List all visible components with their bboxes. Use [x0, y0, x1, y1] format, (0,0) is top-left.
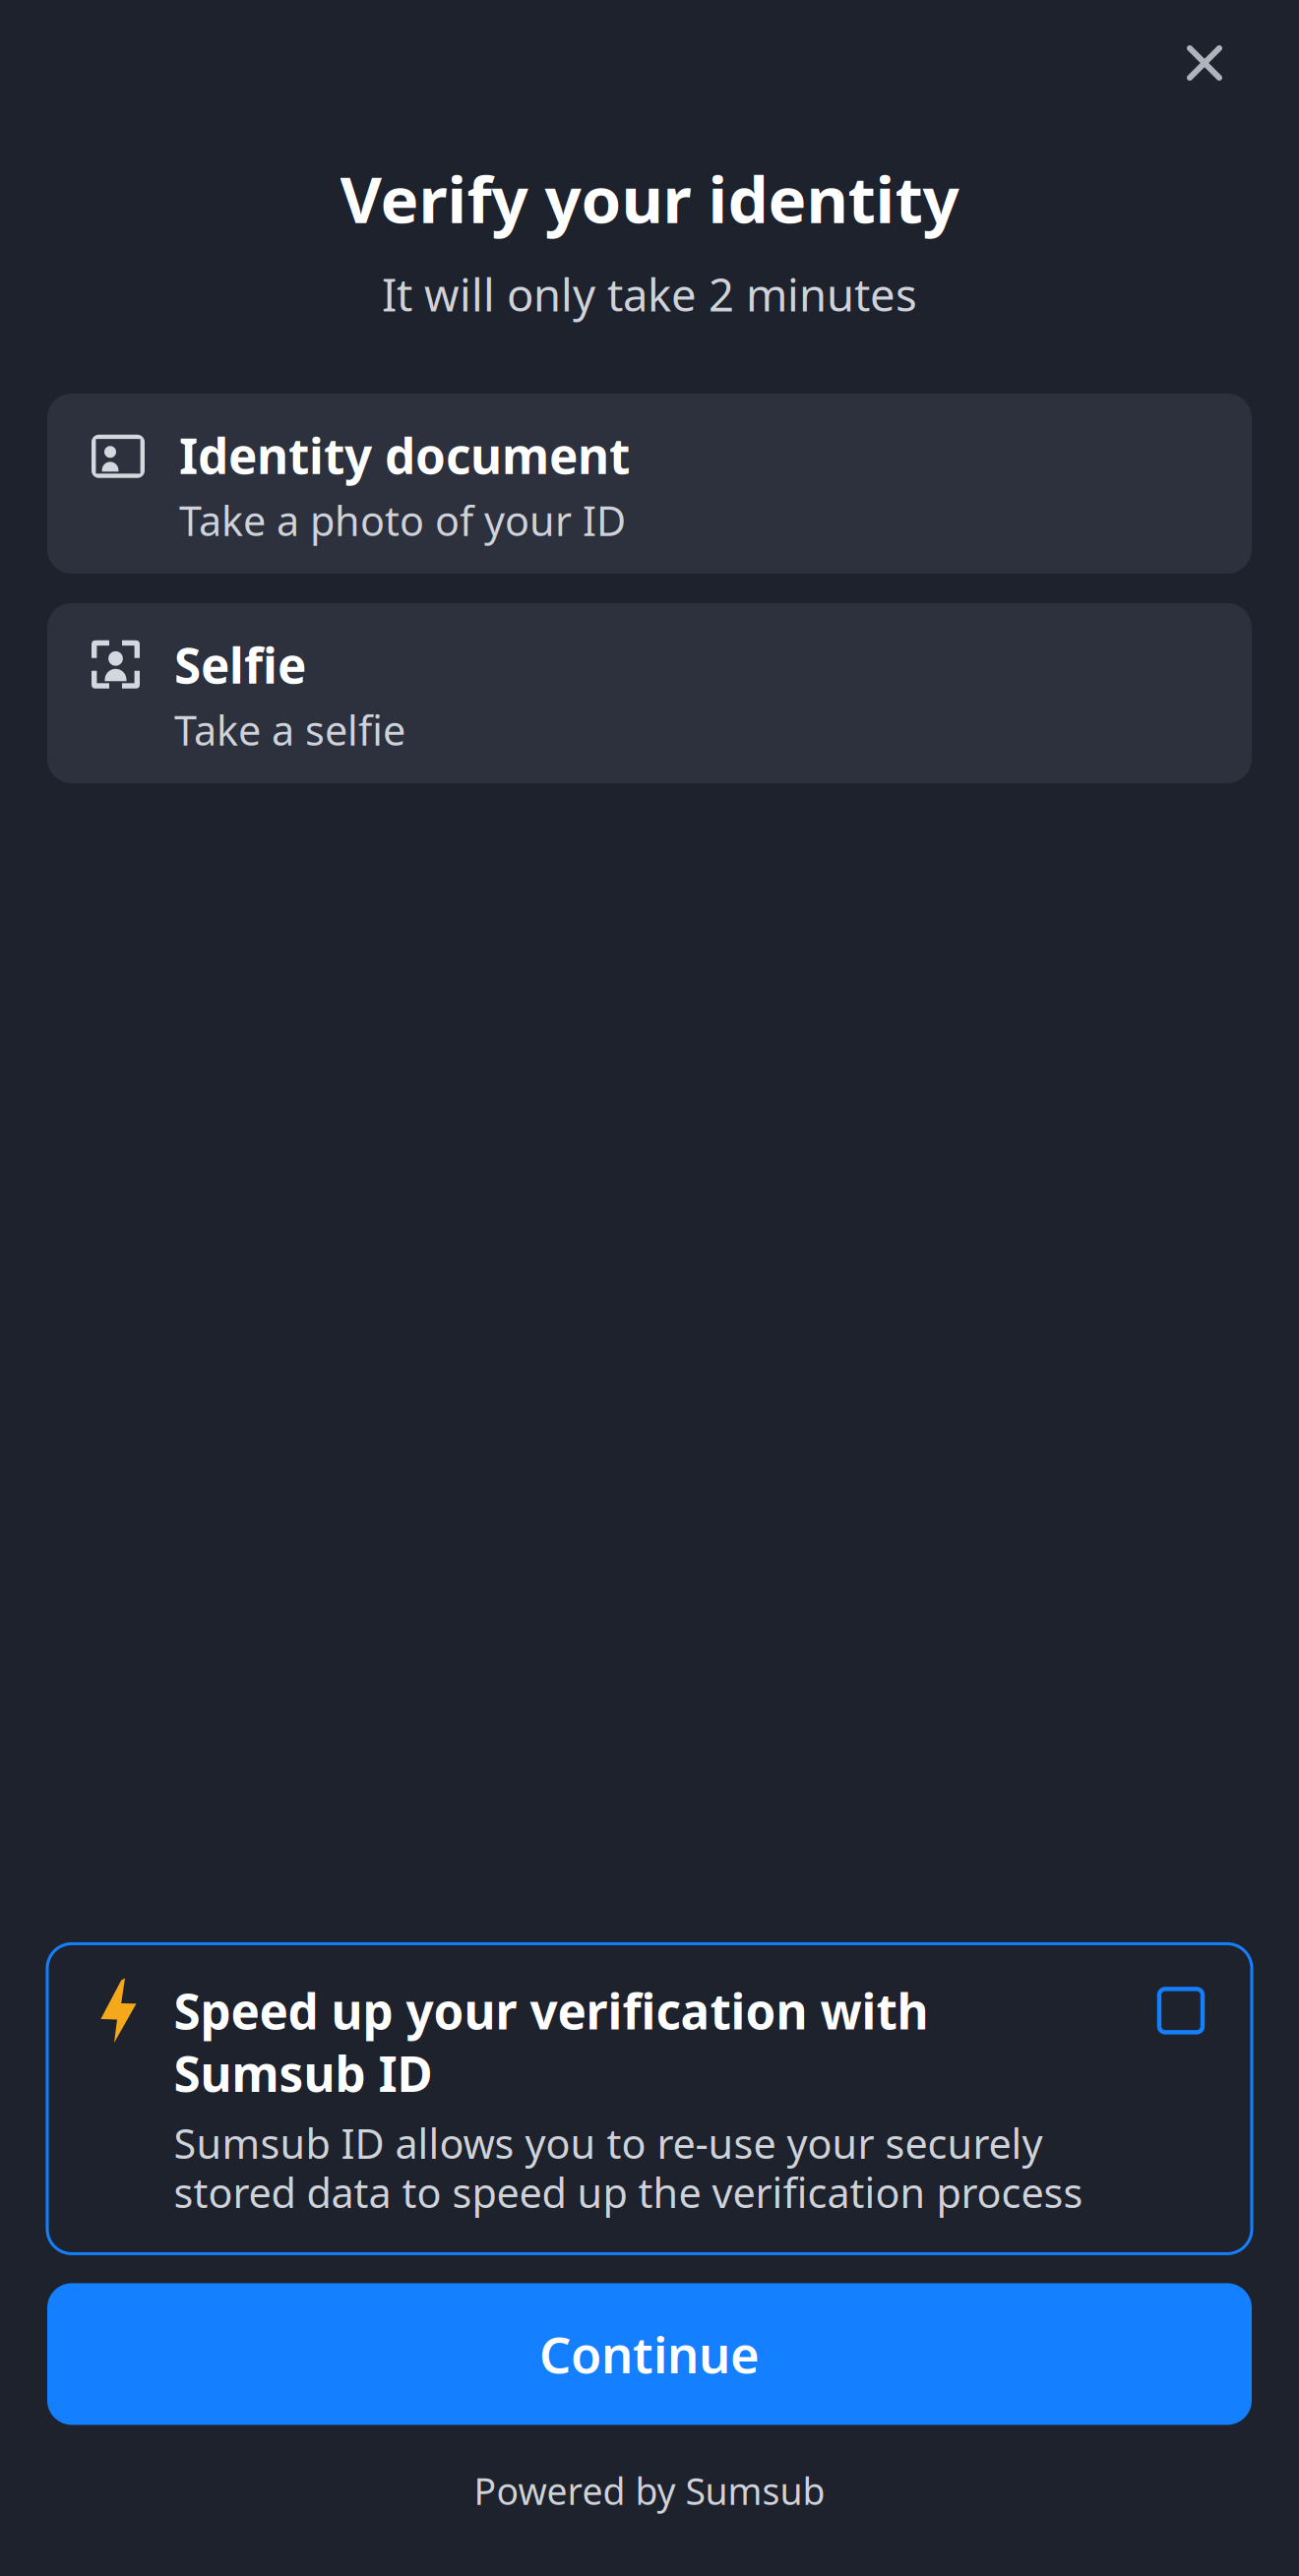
staticText: It will only take 2 minutes [382, 264, 917, 324]
staticText: Powered by Sumsub [474, 2466, 825, 2515]
staticText: Selfie [174, 632, 306, 697]
staticText: Identity document [179, 423, 630, 487]
button[interactable]: Continue [47, 2283, 1252, 2425]
button[interactable]: Selfie [47, 603, 1252, 783]
button[interactable]: Use Sumsub ID [1159, 1989, 1203, 2032]
staticText: Take a photo of your ID [179, 493, 626, 547]
staticText: Take a selfie [174, 703, 405, 757]
button[interactable]: Identity document [47, 394, 1252, 574]
staticText: Sumsub ID allows you to re-use your secu… [174, 2116, 1083, 2219]
staticText: Verify your identity [340, 155, 959, 241]
staticText: Speed up your verification with Sumsub I… [174, 1978, 928, 2105]
button[interactable]: Close [1166, 25, 1243, 101]
button[interactable]: Speed up your verification with Sumsub I… [47, 1944, 1252, 2254]
staticText: Continue [539, 2321, 760, 2387]
